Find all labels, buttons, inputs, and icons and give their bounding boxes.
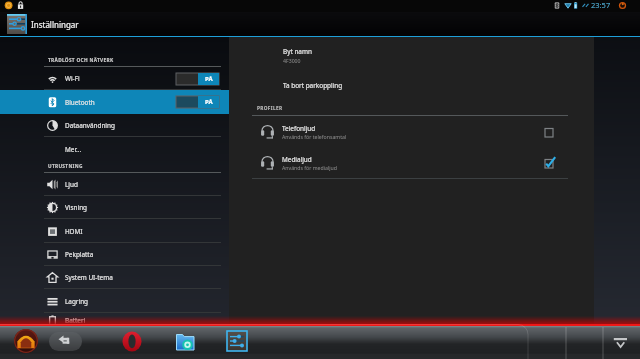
button[interactable]: Settings	[227, 331, 247, 351]
button[interactable]: Launcher	[14, 329, 38, 353]
staticText: Ljud	[65, 180, 78, 189]
staticText: Lagring	[65, 297, 89, 306]
staticText: Används för medialjud	[282, 164, 337, 171]
button[interactable]: Telefonljud	[229, 116, 594, 147]
staticText: 4F3000	[283, 57, 301, 64]
staticText: UTRUSTNING	[48, 163, 83, 170]
button[interactable]: Wi-Fi	[0, 67, 229, 90]
button[interactable]: Batteri	[0, 313, 229, 327]
button[interactable]: Inställningar	[7, 12, 79, 36]
staticText: Ta bort parkoppling	[283, 81, 343, 90]
staticText: PÅ	[205, 98, 213, 106]
staticText: Batteri	[65, 316, 86, 325]
button[interactable]: Medialjud	[229, 147, 594, 178]
button[interactable]: Hide toolbar	[610, 332, 631, 353]
button[interactable]: Byt namn	[229, 47, 594, 64]
staticText: Wi-Fi	[65, 74, 80, 83]
button[interactable]: Mer...	[0, 137, 229, 161]
staticText: Dataanvändning	[65, 121, 115, 130]
staticText: HDMI	[65, 227, 83, 236]
staticText: Bluetooth	[65, 98, 95, 107]
button[interactable]: Lagring	[0, 289, 229, 313]
button[interactable]: Visning	[0, 196, 229, 219]
staticText: Medialjud	[282, 155, 312, 164]
button[interactable]: Ta bort parkoppling	[229, 81, 594, 90]
button[interactable]: PÅ	[176, 73, 219, 85]
staticText: PÅ	[205, 75, 213, 83]
staticText: TRÅDLÖST OCH NÄTVERK	[48, 57, 114, 64]
button[interactable]: Dataanvändning	[0, 114, 229, 137]
staticText: Telefonljud	[282, 124, 316, 133]
button[interactable]: Bluetooth	[0, 90, 229, 114]
button[interactable]: Back	[49, 332, 82, 351]
button[interactable]: System UI-tema	[0, 266, 229, 289]
staticText: Mer...	[65, 145, 82, 154]
staticText: 23:57	[591, 0, 611, 10]
button[interactable]: File manager	[176, 332, 195, 351]
button[interactable]: Opera browser	[122, 331, 142, 351]
staticText: Byt namn	[283, 47, 312, 56]
staticText: System UI-tema	[65, 273, 113, 282]
button[interactable]: Ljud	[0, 173, 229, 196]
staticText: PROFILER	[257, 105, 283, 112]
staticText: Inställningar	[31, 19, 79, 30]
button[interactable]: Pekplatta	[0, 243, 229, 266]
staticText: Visning	[65, 203, 88, 212]
staticText: Används för telefonsamtal	[282, 133, 347, 140]
staticText: Pekplatta	[65, 250, 94, 259]
button[interactable]: HDMI	[0, 219, 229, 243]
button[interactable]: PÅ	[176, 96, 219, 108]
